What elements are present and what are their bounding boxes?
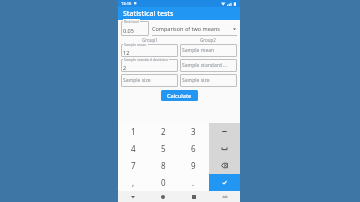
staticText: Group1	[142, 37, 158, 43]
button[interactable]: 8	[148, 157, 178, 174]
staticText: 5	[161, 143, 166, 154]
staticText: Sample standard deviation	[124, 57, 168, 62]
staticText: Calculate	[167, 92, 192, 99]
button[interactable]: 6	[178, 140, 209, 157]
staticText: 3	[191, 126, 196, 137]
staticText: Group2	[200, 37, 216, 43]
button[interactable]: 1	[118, 123, 148, 140]
button[interactable]: ,	[118, 174, 148, 191]
staticText: Sample standard ...	[182, 62, 228, 69]
button[interactable]: Sample standard ...	[180, 59, 237, 72]
staticText: Sample size	[182, 77, 210, 84]
staticText: 6	[191, 143, 196, 154]
staticText: ,	[132, 177, 135, 188]
button[interactable]: Statistical tests	[118, 7, 240, 20]
button[interactable]: .	[178, 174, 209, 191]
button[interactable]: Backspace	[209, 157, 240, 174]
staticText: 0	[161, 177, 166, 188]
staticText: 4	[131, 143, 136, 154]
button[interactable]: 12	[121, 44, 178, 57]
button[interactable]: Hide keyboard	[209, 191, 240, 202]
button[interactable]: 3	[178, 123, 209, 140]
button[interactable]: 0	[148, 174, 178, 191]
button[interactable]: Sample size	[180, 74, 237, 87]
staticText: 2	[161, 126, 166, 137]
staticText: 9	[191, 160, 196, 171]
staticText: 1	[131, 126, 136, 137]
button[interactable]: Enter	[209, 174, 240, 191]
button[interactable]: Sample size	[121, 74, 178, 87]
button[interactable]: 2	[148, 123, 178, 140]
button[interactable]: Space	[209, 140, 240, 157]
staticText: Sample size	[123, 77, 151, 84]
button[interactable]: 0.05	[121, 21, 149, 36]
staticText: 7	[131, 160, 136, 171]
button[interactable]: 2	[121, 59, 178, 72]
button[interactable]: Calculate	[161, 90, 198, 101]
button[interactable]: 9	[178, 157, 209, 174]
button[interactable]: Minus	[209, 123, 240, 140]
button[interactable]: 7	[118, 157, 148, 174]
button[interactable]: Sample mean	[180, 44, 237, 57]
button[interactable]: Recents	[178, 191, 209, 202]
button[interactable]: 4	[118, 140, 148, 157]
staticText: .	[192, 177, 195, 188]
staticText: Sample mean	[182, 47, 215, 54]
staticText: Risk level	[124, 19, 139, 24]
staticText: 13:16	[121, 1, 132, 6]
button[interactable]: Home	[148, 191, 178, 202]
staticText: 8	[161, 160, 166, 171]
button[interactable]: 5	[148, 140, 178, 157]
button[interactable]: Back	[118, 191, 148, 202]
button[interactable]: Comparison of two means	[152, 21, 237, 36]
staticText: 2	[123, 64, 127, 71]
staticText: Sample mean	[124, 42, 147, 47]
staticText: 0.05	[123, 27, 134, 34]
staticText: Statistical tests	[123, 9, 174, 19]
staticText: 12	[123, 49, 130, 56]
staticText: Comparison of two means	[152, 25, 220, 32]
